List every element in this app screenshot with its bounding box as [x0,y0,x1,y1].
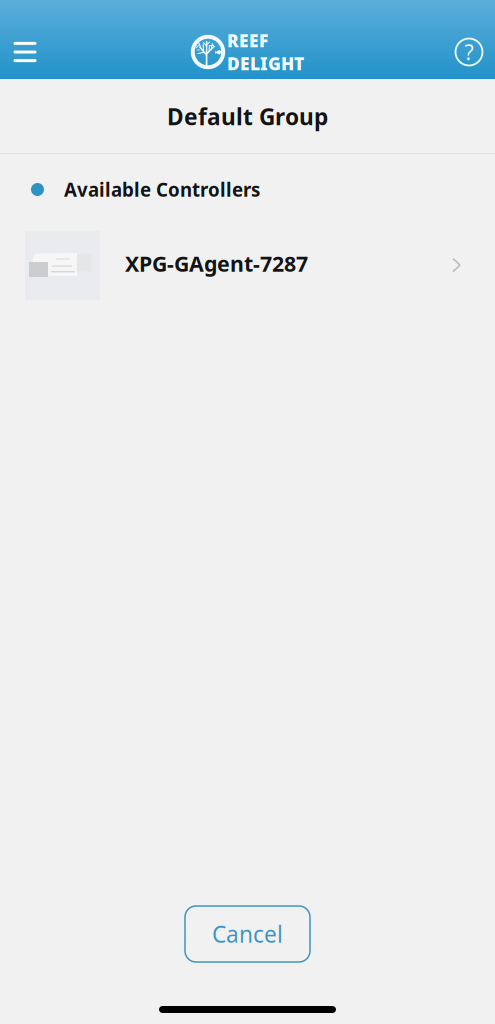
staticText: Default Group [167,101,328,131]
staticText: REEF [227,29,268,52]
staticText: DELIGHT [227,52,304,75]
staticText: XPG-GAgent-7287 [125,249,308,278]
button[interactable]: Cancel [185,906,310,962]
staticText: ? [464,38,473,66]
staticText: Cancel [212,919,283,949]
button[interactable]: Help [443,24,495,79]
button[interactable]: Menu [0,24,50,79]
staticText: Available Controllers [64,177,260,202]
button[interactable]: XPG-GAgent-7287 [0,225,495,300]
